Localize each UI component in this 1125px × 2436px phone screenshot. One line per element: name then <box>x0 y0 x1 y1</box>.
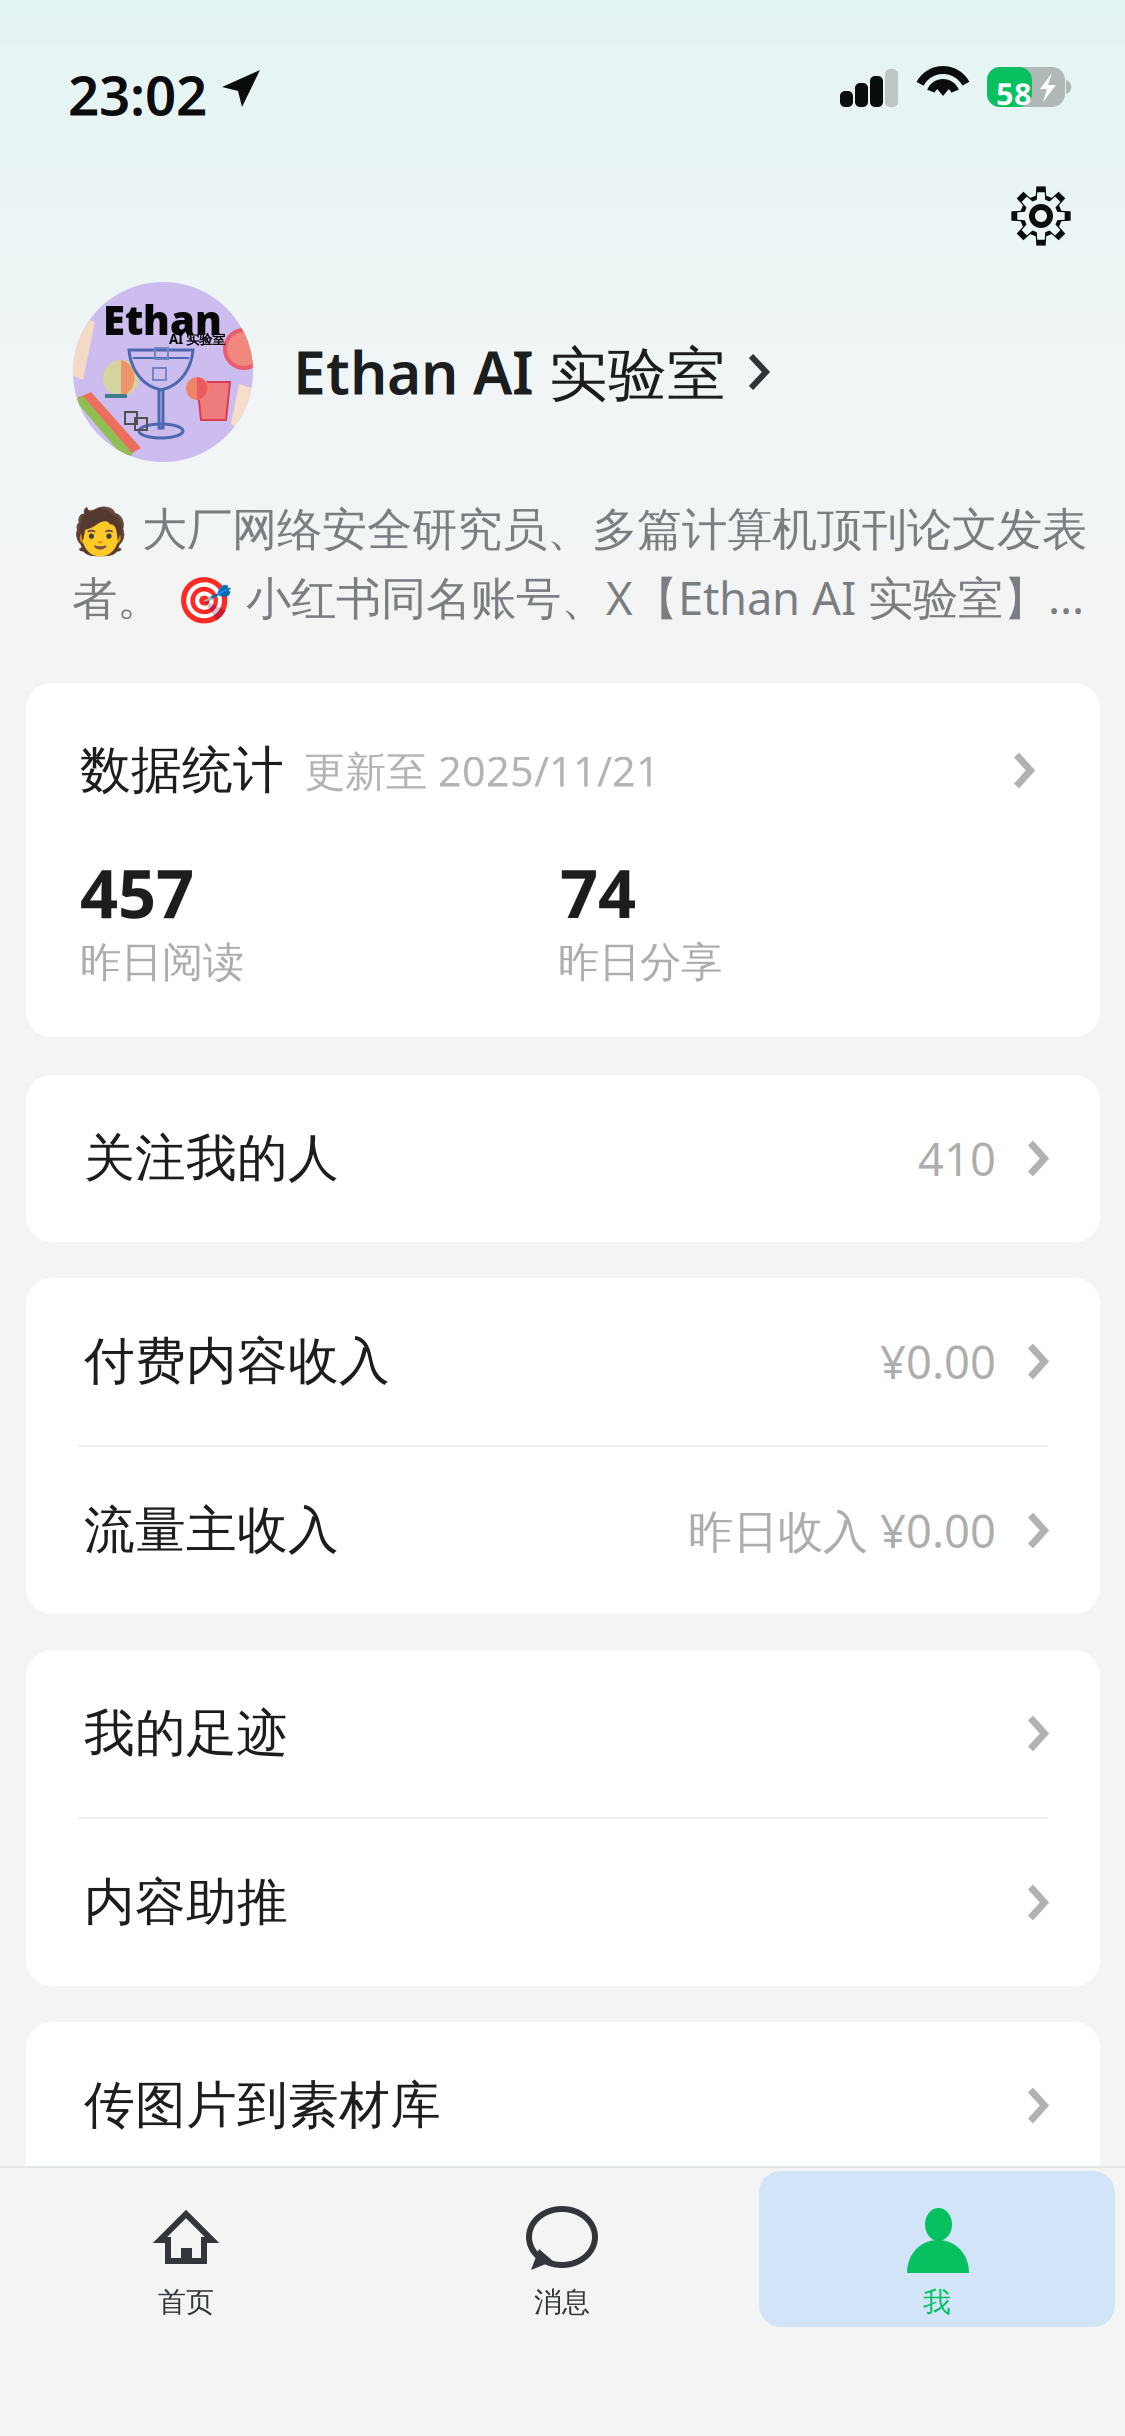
staticText: 消息 <box>534 2285 590 2319</box>
button[interactable]: 首页 <box>0 2171 375 2331</box>
staticText: 更新至 2025/11/21 <box>304 743 660 798</box>
staticText: 数据统计 <box>80 739 284 802</box>
staticText: 内容助推 <box>84 1871 288 1934</box>
staticText: AI 实验室 <box>169 330 225 348</box>
button[interactable]: 传图片到素材库 <box>26 2022 1100 2189</box>
button[interactable]: Ethan <box>73 282 1123 462</box>
button[interactable]: 内容助推 <box>26 1819 1100 1986</box>
button[interactable]: 更多 <box>26 2191 1100 2358</box>
staticText: 昨日阅读 <box>80 937 244 988</box>
button[interactable]: 付费内容收入 <box>26 1278 1100 1445</box>
button[interactable]: 数据统计 <box>26 683 1100 858</box>
staticText: 58 <box>996 73 1032 114</box>
staticText: 流量主收入 <box>84 1499 339 1562</box>
staticText: 74 <box>560 848 636 936</box>
staticText: 23:02 <box>68 58 207 131</box>
staticText: 我 <box>923 2285 951 2319</box>
staticText: 我的足迹 <box>84 1702 288 1765</box>
staticText: 457 <box>80 848 194 936</box>
staticText: ¥0.00 <box>880 1331 996 1392</box>
staticText: 传图片到素材库 <box>84 2074 441 2137</box>
staticText: 昨日收入 ¥0.00 <box>688 1500 996 1561</box>
button[interactable]: Settings <box>993 168 1089 264</box>
staticText: Ethan AI 实验室 <box>293 333 726 411</box>
button[interactable]: 消息 <box>375 2171 750 2331</box>
staticText: 410 <box>918 1128 996 1189</box>
staticText: Ethan <box>103 293 222 346</box>
staticText: 付费内容收入 <box>84 1330 390 1393</box>
staticText: 首页 <box>158 2285 214 2319</box>
button[interactable]: 关注我的人 <box>26 1075 1100 1242</box>
staticText: 昨日分享 <box>558 937 722 988</box>
button[interactable]: 我的足迹 <box>26 1650 1100 1817</box>
staticText: 🧑 大厂网络安全研究员、多篇计算机顶刊论文发表者。 🎯 小红书同名账号、X【Et… <box>72 502 1092 627</box>
staticText: 更多 <box>84 2243 186 2306</box>
staticText: 关注我的人 <box>84 1127 339 1190</box>
button[interactable]: 流量主收入 <box>26 1447 1100 1614</box>
button[interactable]: 我 <box>759 2171 1115 2327</box>
